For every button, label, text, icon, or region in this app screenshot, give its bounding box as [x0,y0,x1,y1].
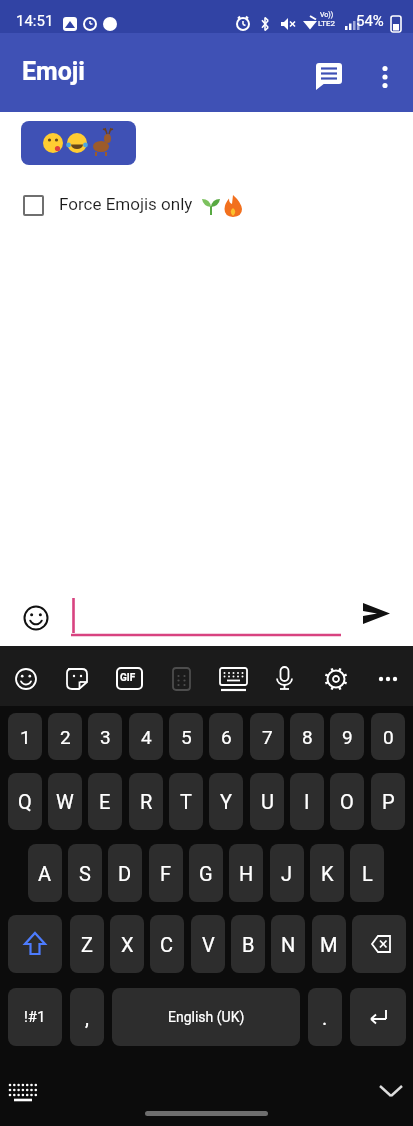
button[interactable] [352,915,406,973]
staticText: 8 [302,726,313,748]
button[interactable] [104,654,152,702]
staticText: !#1 [24,1008,46,1026]
button[interactable]: Z [70,915,104,973]
staticText: GIF [120,672,136,684]
staticText: U [261,790,274,813]
button[interactable]: O [330,773,364,830]
button[interactable]: I [290,773,324,830]
button[interactable]: H [229,844,263,902]
staticText: 5 [181,726,192,748]
button[interactable] [257,654,305,702]
staticText: J [281,862,293,885]
button[interactable]: U [250,773,284,830]
button[interactable]: V [191,915,225,973]
staticText: English (UK) [168,1009,245,1025]
staticText: S [79,862,91,885]
button[interactable]: Q [8,773,42,830]
button[interactable] [350,988,406,1046]
button[interactable]: 5 [169,713,203,760]
staticText: A [38,862,52,885]
staticText: , [85,1006,89,1029]
staticText: Q [18,790,32,813]
button[interactable]: B [231,915,265,973]
staticText: R [140,790,153,813]
staticText: 4 [141,726,152,748]
button[interactable]: N [271,915,305,973]
staticText: X [121,933,134,956]
button[interactable]: G [189,844,223,902]
button[interactable] [16,594,58,636]
staticText: D [118,862,132,885]
staticText: T [180,790,192,813]
staticText: V [202,933,215,956]
button[interactable] [366,53,406,99]
button[interactable]: L [350,844,384,902]
button[interactable] [370,1074,410,1110]
button[interactable]: 1 [8,713,42,760]
staticText: Emoji [22,57,85,86]
button[interactable]: D [108,844,142,902]
button[interactable]: E [88,773,122,830]
staticText: 7 [262,726,273,748]
button[interactable]: English (UK) [112,988,300,1046]
staticText: E [99,790,111,813]
button[interactable]: 0 [371,713,405,760]
button[interactable]: A [28,844,62,902]
staticText: K [321,862,334,885]
staticText: M [320,933,338,956]
staticText: . [322,1006,328,1029]
staticText: O [340,790,354,813]
button[interactable]: !#1 [8,988,62,1046]
staticText: 1 [20,726,31,748]
button[interactable]: X [110,915,144,973]
button[interactable] [308,654,356,702]
staticText: LTE2 [318,19,336,28]
staticText: Force Emojis only [59,194,193,214]
button[interactable]: R [129,773,163,830]
button[interactable] [4,1076,44,1112]
staticText: 0 [383,726,394,748]
button[interactable] [21,121,136,165]
button[interactable] [206,654,254,702]
button[interactable]: T [169,773,203,830]
staticText: 2 [60,726,71,748]
button[interactable] [359,654,407,702]
button[interactable]: J [270,844,304,902]
staticText: 9 [342,726,353,748]
button[interactable]: 2 [48,713,82,760]
button[interactable]: M [312,915,346,973]
button[interactable]: Force Emojis only [15,186,275,226]
staticText: H [239,862,254,885]
button[interactable]: C [150,915,184,973]
staticText: 14:51 [16,12,54,30]
staticText: W [56,790,74,813]
button[interactable]: , [70,988,104,1046]
button[interactable]: S [68,844,102,902]
staticText: 54% [356,12,384,30]
button[interactable] [155,654,203,702]
button[interactable]: Y [209,773,243,830]
button[interactable]: 8 [290,713,324,760]
button[interactable]: W [48,773,82,830]
staticText: P [382,790,395,813]
button[interactable]: K [310,844,344,902]
button[interactable] [352,592,402,634]
button[interactable]: 7 [250,713,284,760]
button[interactable] [53,654,101,702]
button[interactable] [306,53,352,99]
staticText: 3 [100,726,111,748]
button[interactable]: 9 [330,713,364,760]
button[interactable] [8,915,62,973]
staticText: G [199,862,213,885]
staticText: L [362,862,373,885]
button[interactable]: . [308,988,342,1046]
staticText: I [304,790,310,813]
button[interactable]: 4 [129,713,163,760]
staticText: C [160,933,174,956]
button[interactable] [2,654,50,702]
button[interactable]: P [371,773,405,830]
button[interactable]: 3 [88,713,122,760]
button[interactable]: 6 [209,713,243,760]
staticText: Z [81,933,93,956]
button[interactable]: F [149,844,183,902]
